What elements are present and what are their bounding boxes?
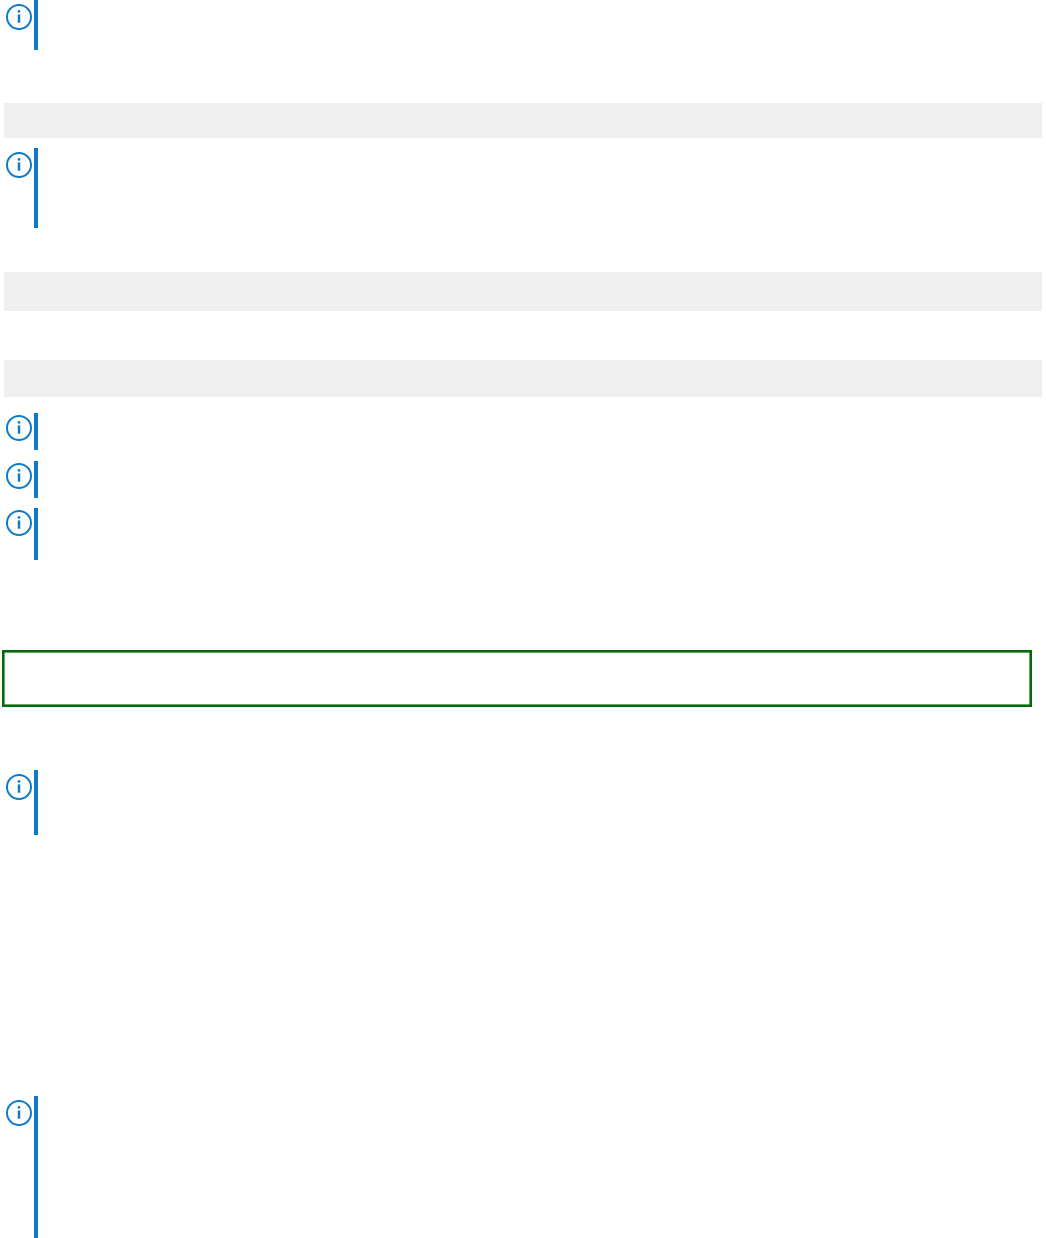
button[interactable]: Information note <box>6 4 32 30</box>
button[interactable]: Information note <box>6 415 32 441</box>
button[interactable]: Information note <box>6 510 32 536</box>
button[interactable]: Information note <box>6 1100 32 1126</box>
button[interactable]: Information note <box>6 463 32 489</box>
button[interactable]: Information note <box>6 774 32 800</box>
button[interactable] <box>2 650 1032 707</box>
button[interactable]: Information note <box>6 152 32 178</box>
